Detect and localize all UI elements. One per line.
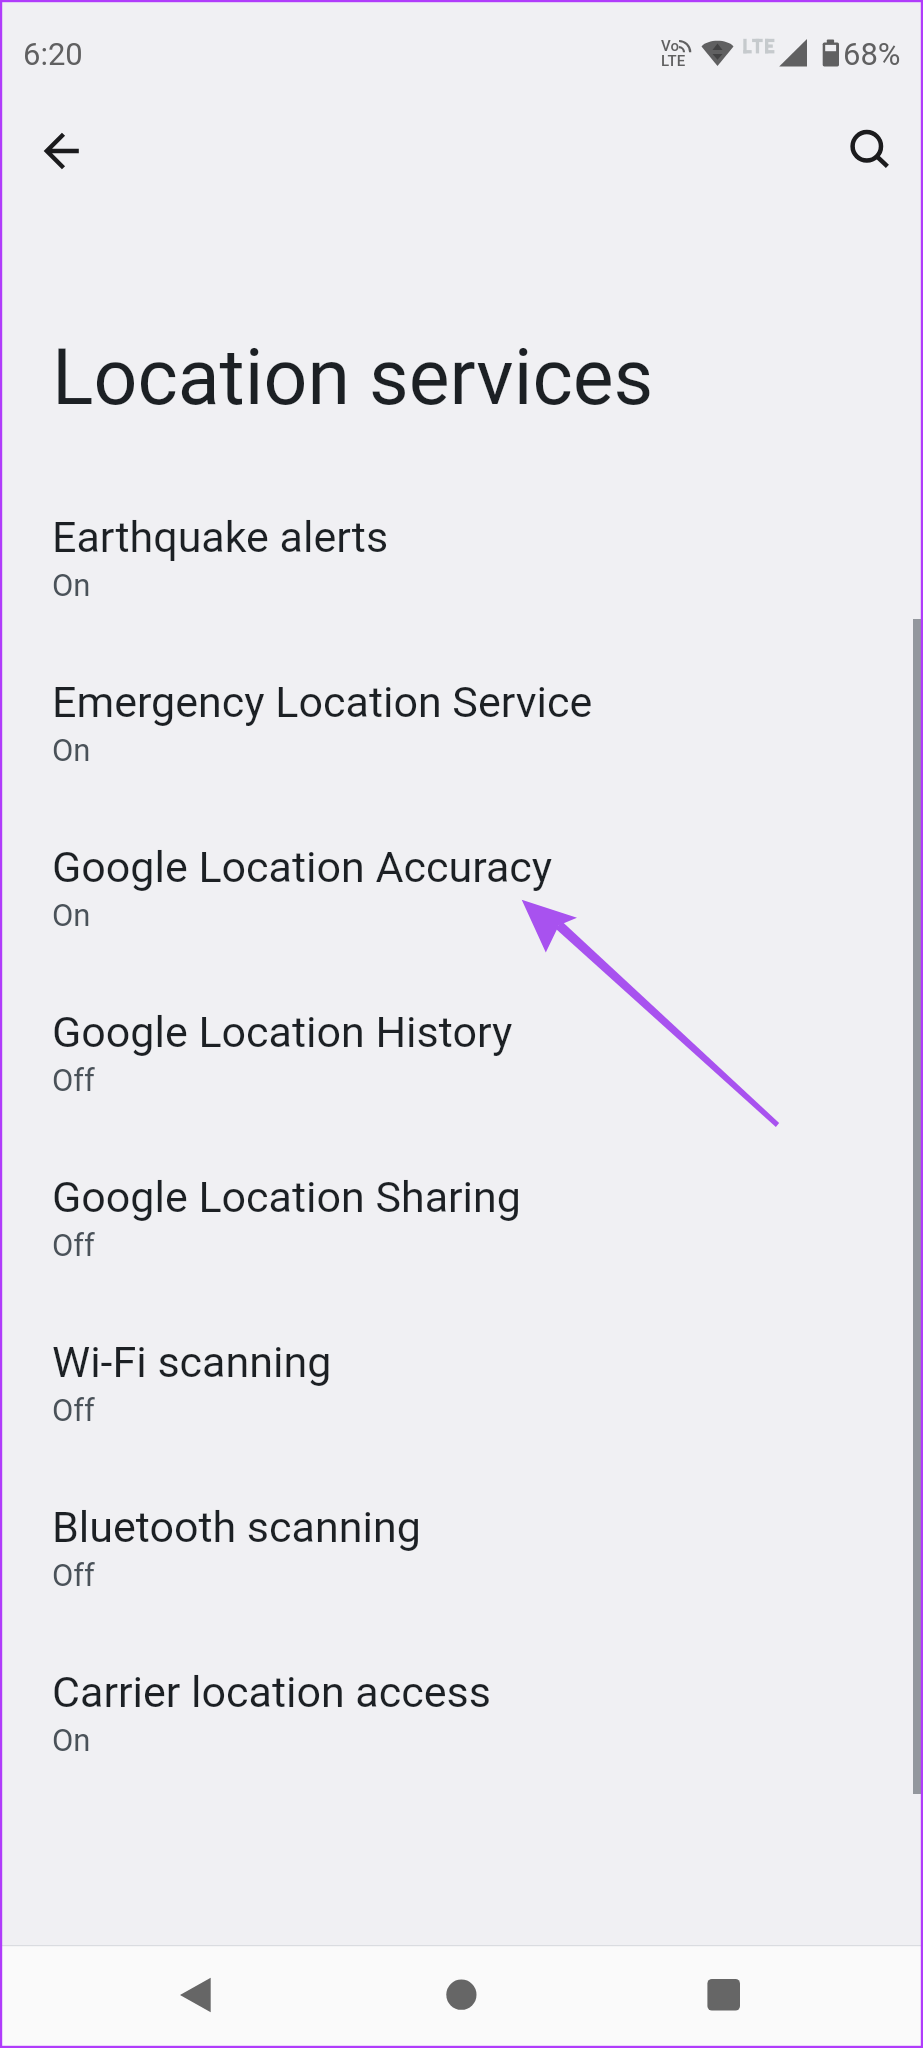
staticText: Google Location Sharing (52, 1172, 521, 1222)
button[interactable]: Google Location Sharing (0, 1165, 923, 1330)
staticText: Carrier location access (52, 1667, 491, 1717)
staticText: Vo (661, 37, 679, 55)
button[interactable]: Wi-Fi scanning (0, 1330, 923, 1495)
staticText: On (52, 1722, 91, 1758)
button[interactable]: Bluetooth scanning (0, 1495, 923, 1660)
staticText: Wi-Fi scanning (52, 1337, 332, 1387)
button[interactable]: Earthquake alerts (0, 505, 923, 670)
staticText: Off (52, 1557, 95, 1593)
staticText: Earthquake alerts (52, 512, 389, 562)
staticText: LTE (661, 52, 686, 70)
staticText: Off (52, 1062, 95, 1098)
staticText: Bluetooth scanning (52, 1502, 421, 1552)
staticText: Off (52, 1392, 95, 1428)
button[interactable]: Home (416, 1950, 506, 2040)
staticText: Emergency Location Service (52, 677, 593, 727)
staticText: Google Location Accuracy (52, 842, 553, 892)
button[interactable]: Back (150, 1950, 240, 2040)
staticText: 68% (843, 36, 901, 72)
button[interactable]: Carrier location access (0, 1660, 923, 1825)
button[interactable]: Back (20, 107, 108, 195)
button[interactable]: Google Location Accuracy (0, 835, 923, 1000)
staticText: Location services (52, 333, 654, 423)
button[interactable]: Emergency Location Service (0, 670, 923, 835)
staticText: Off (52, 1227, 95, 1263)
staticText: On (52, 732, 91, 768)
staticText: On (52, 897, 91, 933)
button[interactable]: Search (823, 102, 911, 190)
button[interactable]: Google Location History (0, 1000, 923, 1165)
staticText: 6:20 (23, 36, 83, 72)
button[interactable]: Recents (678, 1950, 768, 2040)
staticText: On (52, 567, 91, 603)
staticText: Google Location History (52, 1007, 513, 1057)
